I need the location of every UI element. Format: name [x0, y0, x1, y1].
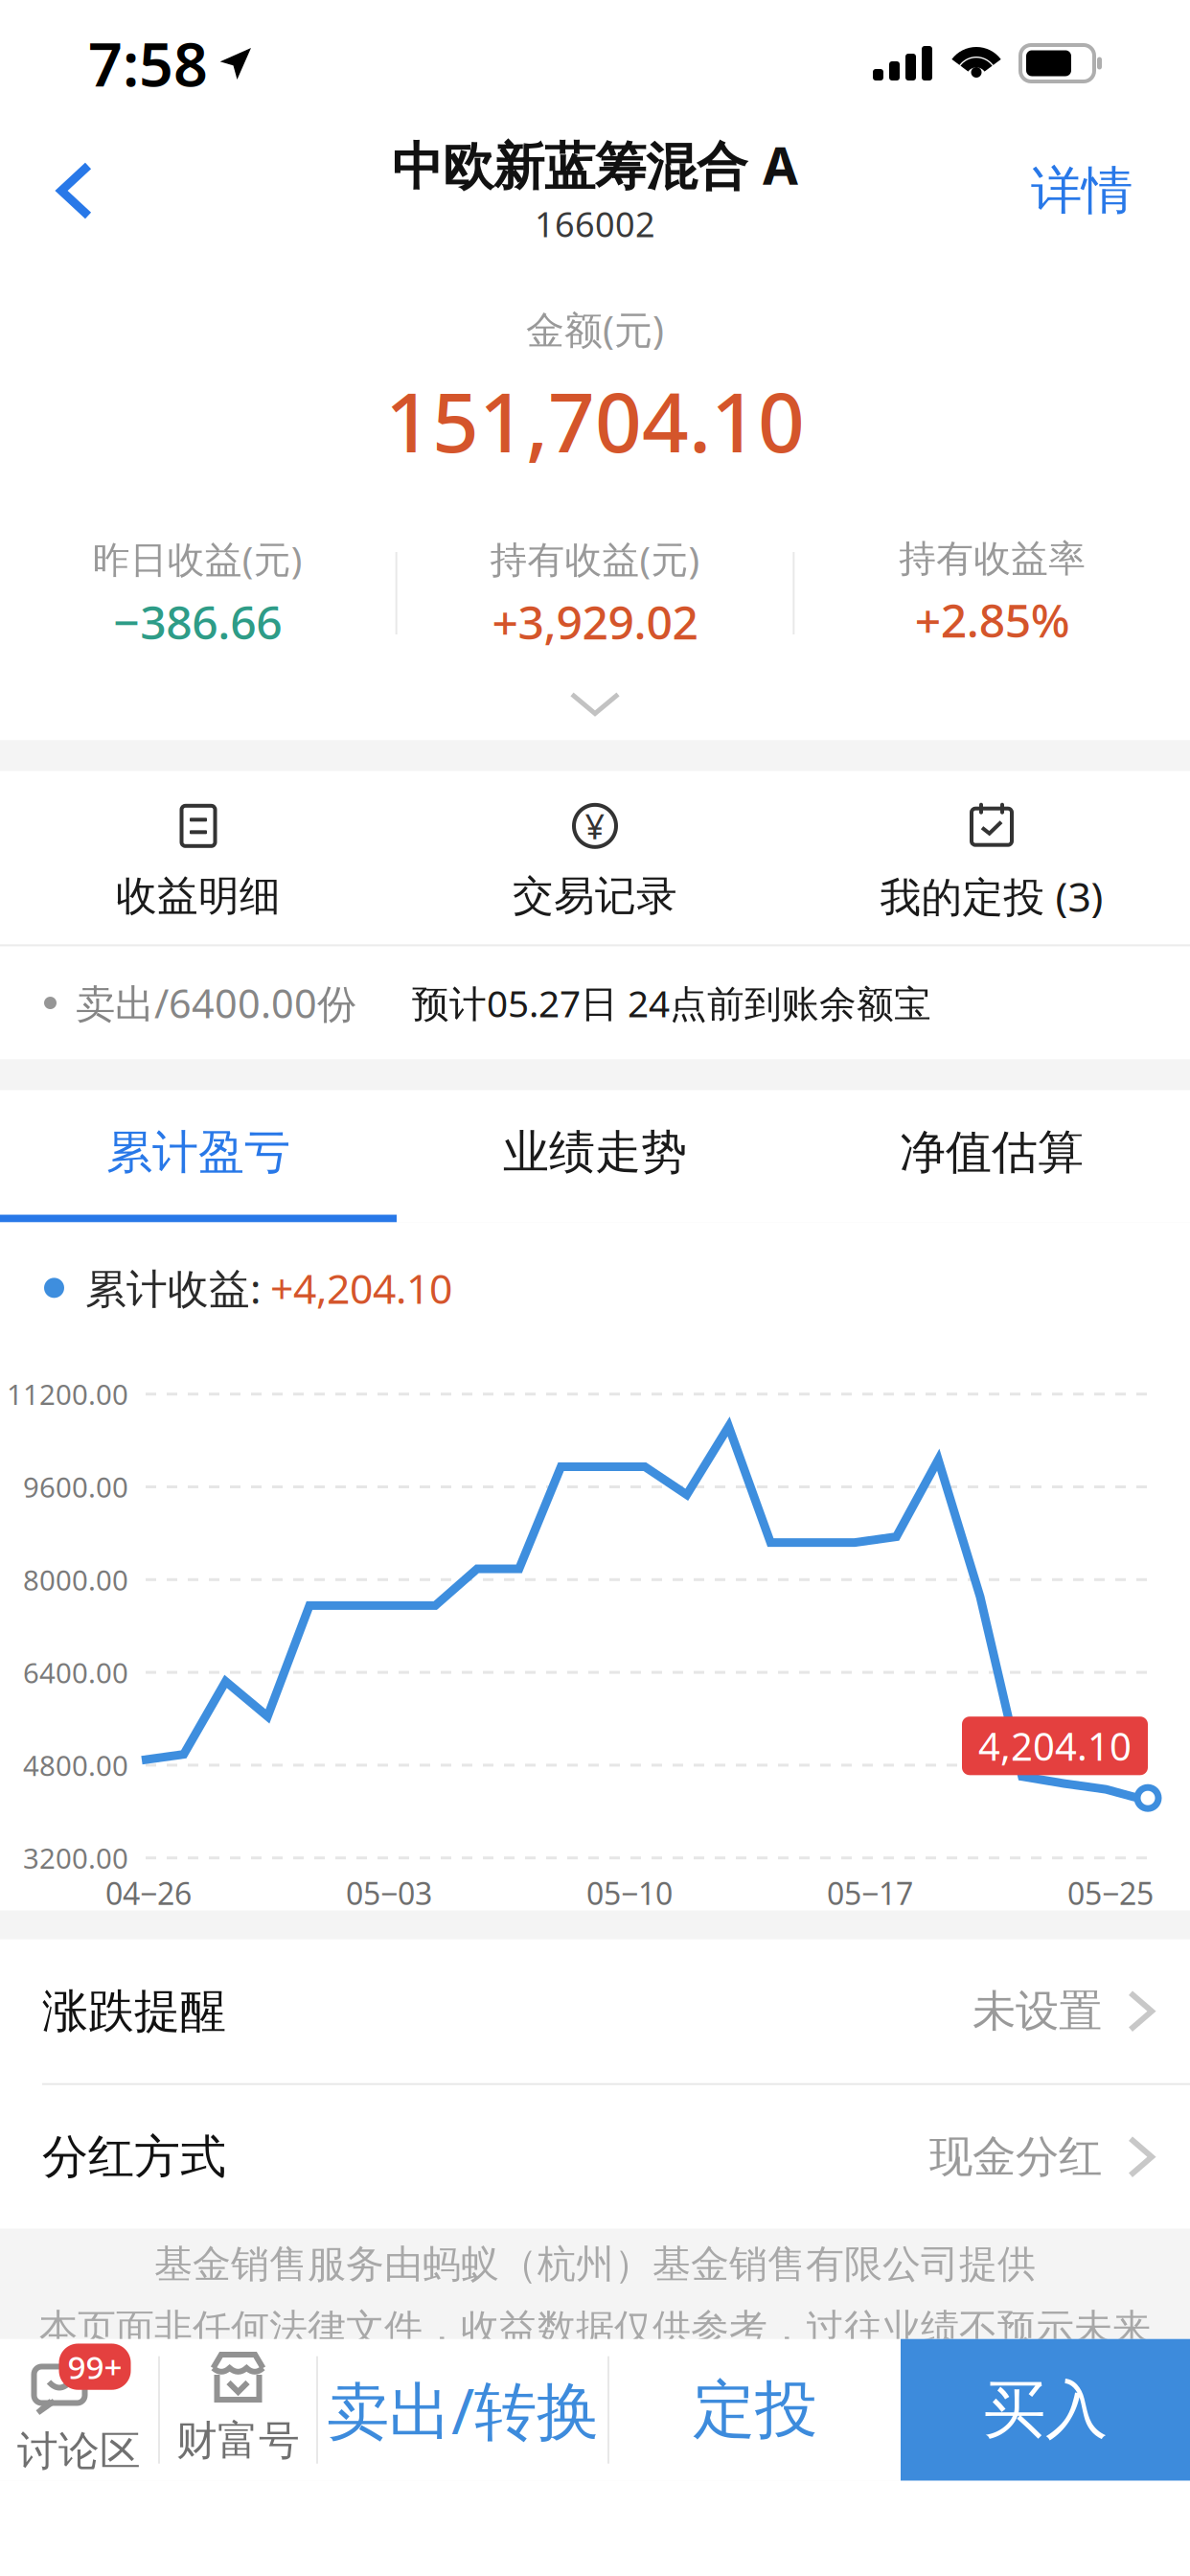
- staticText: 买入: [983, 2371, 1108, 2448]
- staticText: 05−10: [586, 1873, 673, 1914]
- staticText: 11200.00: [7, 1375, 128, 1413]
- button[interactable]: ¥: [397, 771, 793, 944]
- button[interactable]: 详情: [989, 132, 1190, 249]
- staticText: 金额(元): [526, 304, 664, 355]
- staticText: 8000.00: [23, 1561, 128, 1598]
- staticText: 累计收益:: [85, 1261, 261, 1315]
- staticText: 9600.00: [23, 1468, 128, 1506]
- button[interactable]: 定投: [609, 2339, 901, 2481]
- staticText: +3,929.02: [492, 591, 698, 652]
- staticText: −386.66: [113, 591, 282, 652]
- staticText: 我的定投 (3): [880, 869, 1103, 923]
- staticText: 基金销售服务由蚂蚁（杭州）基金销售有限公司提供: [154, 2241, 1036, 2288]
- staticText: 99+: [68, 2346, 122, 2388]
- staticText: 卖出/6400.00份: [76, 977, 356, 1029]
- button[interactable]: 我的定投 (3): [793, 771, 1190, 944]
- staticText: 未设置: [973, 1985, 1102, 2038]
- button[interactable]: 99+: [0, 2339, 158, 2481]
- staticText: 昨日收益(元): [93, 534, 303, 583]
- staticText: 定投: [693, 2371, 817, 2448]
- button[interactable]: Back: [0, 133, 134, 248]
- staticText: 讨论区: [17, 2426, 141, 2476]
- staticText: 151,704.10: [385, 366, 805, 475]
- staticText: 6400.00: [23, 1654, 128, 1691]
- staticText: 分红方式: [42, 2129, 226, 2185]
- button[interactable]: 分红方式: [0, 2085, 1190, 2229]
- staticText: 166002: [535, 201, 655, 247]
- staticText: 3200.00: [23, 1839, 128, 1877]
- staticText: 财富号: [176, 2415, 300, 2466]
- staticText: 业绩走势: [503, 1124, 687, 1181]
- staticText: 4,204.10: [978, 1720, 1132, 1771]
- staticText: 05−17: [827, 1873, 913, 1914]
- button[interactable]: 卖出/转换: [318, 2339, 607, 2481]
- staticText: 本页面非任何法律文件，收益数据仅供参考，过往业绩不预示未来: [39, 2305, 1151, 2352]
- staticText: 现金分红: [929, 2130, 1102, 2184]
- staticText: 4800.00: [23, 1746, 128, 1784]
- staticText: 净值估算: [900, 1124, 1084, 1181]
- staticText: 05−03: [346, 1873, 432, 1914]
- staticText: +4,204.10: [270, 1261, 452, 1315]
- staticText: 04−26: [105, 1873, 192, 1914]
- button[interactable]: 净值估算: [793, 1090, 1190, 1215]
- staticText: 详情: [1031, 159, 1133, 222]
- staticText: 预计05.27日 24点前到账余额宝: [412, 978, 931, 1028]
- staticText: 涨跌提醒: [42, 1983, 226, 2040]
- staticText: 卖出/转换: [327, 2368, 599, 2452]
- staticText: 持有收益(元): [490, 534, 700, 583]
- staticText: 累计盈亏: [106, 1124, 290, 1181]
- button[interactable]: 涨跌提醒: [0, 1939, 1190, 2083]
- staticText: 中欧新蓝筹混合 A: [392, 131, 798, 199]
- button[interactable]: 收益明细: [0, 771, 397, 944]
- button[interactable]: 累计盈亏: [0, 1090, 397, 1215]
- button[interactable]: 业绩走势: [397, 1090, 793, 1215]
- button[interactable]: Collapse: [0, 652, 1190, 740]
- staticText: ¥: [585, 803, 605, 849]
- staticText: 7:58: [88, 23, 208, 103]
- button[interactable]: 财富号: [160, 2339, 316, 2481]
- staticText: 05−25: [1067, 1873, 1154, 1914]
- button[interactable]: 买入: [901, 2339, 1190, 2481]
- staticText: 持有收益率: [899, 536, 1086, 582]
- staticText: 收益明细: [116, 871, 281, 921]
- staticText: +2.85%: [915, 589, 1070, 650]
- staticText: 交易记录: [513, 871, 677, 921]
